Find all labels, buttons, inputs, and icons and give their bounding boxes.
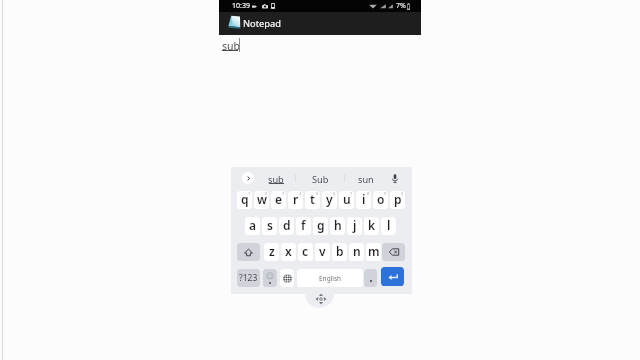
staticText: English	[319, 274, 342, 283]
button[interactable]: sun	[346, 167, 386, 189]
staticText: b	[336, 243, 344, 259]
button[interactable]: h	[330, 217, 345, 235]
staticText: 9	[384, 191, 387, 196]
button[interactable]: t	[305, 191, 320, 209]
staticText: 7	[350, 191, 353, 196]
button[interactable]: p	[390, 191, 405, 209]
staticText: ?123	[239, 272, 258, 284]
button[interactable]: y	[322, 191, 337, 209]
staticText: 1	[248, 191, 251, 196]
button[interactable]: Voice input	[385, 170, 405, 186]
staticText: s	[267, 217, 273, 233]
button[interactable]: d	[279, 217, 294, 235]
staticText: g	[317, 217, 325, 233]
staticText: p	[394, 191, 402, 207]
staticText: y	[326, 191, 333, 207]
button[interactable]: x	[281, 243, 296, 261]
staticText: h	[334, 217, 342, 233]
staticText: n	[353, 243, 361, 259]
button[interactable]: o	[373, 191, 388, 209]
staticText: v	[319, 243, 326, 259]
staticText: x	[285, 243, 292, 259]
button[interactable]: c	[298, 243, 313, 261]
staticText: 3	[282, 191, 285, 196]
staticText: l	[387, 217, 391, 233]
staticText: i	[362, 191, 366, 207]
button[interactable]: Sub	[300, 167, 340, 189]
button[interactable]: u	[339, 191, 354, 209]
staticText: c	[302, 243, 309, 259]
button[interactable]: Emoji	[263, 269, 277, 287]
button[interactable]: sub	[256, 167, 296, 189]
staticText: 5	[316, 191, 319, 196]
staticText: w	[257, 191, 267, 207]
button[interactable]: q	[237, 191, 252, 209]
button[interactable]: e	[271, 191, 286, 209]
button[interactable]: l	[381, 217, 396, 235]
button[interactable]: Change keyboard	[280, 269, 294, 287]
button[interactable]: f	[296, 217, 311, 235]
button[interactable]: i	[356, 191, 371, 209]
staticText: sun	[358, 173, 374, 186]
staticText: o	[377, 191, 385, 207]
staticText: sub	[268, 173, 284, 186]
staticText: Sub	[312, 173, 329, 186]
staticText: f	[301, 217, 306, 233]
staticText: 4	[299, 191, 302, 196]
button[interactable]: English	[297, 269, 363, 287]
button[interactable]: k	[364, 217, 379, 235]
button[interactable]: z	[264, 243, 279, 261]
button[interactable]: s	[262, 217, 277, 235]
button[interactable]: v	[315, 243, 330, 261]
staticText: 10:39	[232, 1, 250, 11]
staticText: m	[368, 243, 380, 259]
button[interactable]: ?123	[237, 269, 260, 287]
button[interactable]: m	[366, 243, 381, 261]
button[interactable]: More suggestions	[242, 172, 254, 184]
button[interactable]: j	[347, 217, 362, 235]
staticText: j	[353, 217, 357, 233]
staticText: 8	[367, 191, 370, 196]
button[interactable]: Backspace	[382, 243, 405, 261]
staticText: u	[343, 191, 351, 207]
staticText: 7%	[396, 1, 406, 11]
staticText: z	[269, 243, 275, 259]
staticText: 2	[265, 191, 268, 196]
button[interactable]: a	[245, 217, 260, 235]
button[interactable]: b	[332, 243, 347, 261]
staticText: q	[241, 191, 249, 207]
button[interactable]: n	[349, 243, 364, 261]
staticText: Notepad	[243, 17, 281, 30]
button[interactable]: Move keyboard	[305, 279, 334, 308]
button[interactable]: g	[313, 217, 328, 235]
staticText: 0	[401, 191, 404, 196]
staticText: t	[310, 191, 315, 207]
button[interactable]: Shift	[237, 243, 260, 261]
button[interactable]	[364, 269, 377, 287]
staticText: 6	[333, 191, 336, 196]
staticText: k	[368, 217, 376, 233]
staticText: r	[293, 191, 299, 207]
button[interactable]: w	[254, 191, 269, 209]
button[interactable]: Enter	[381, 267, 404, 286]
staticText: a	[249, 217, 257, 233]
staticText: sub	[222, 39, 240, 53]
button[interactable]: r	[288, 191, 303, 209]
staticText: d	[283, 217, 291, 233]
staticText: e	[275, 191, 283, 207]
